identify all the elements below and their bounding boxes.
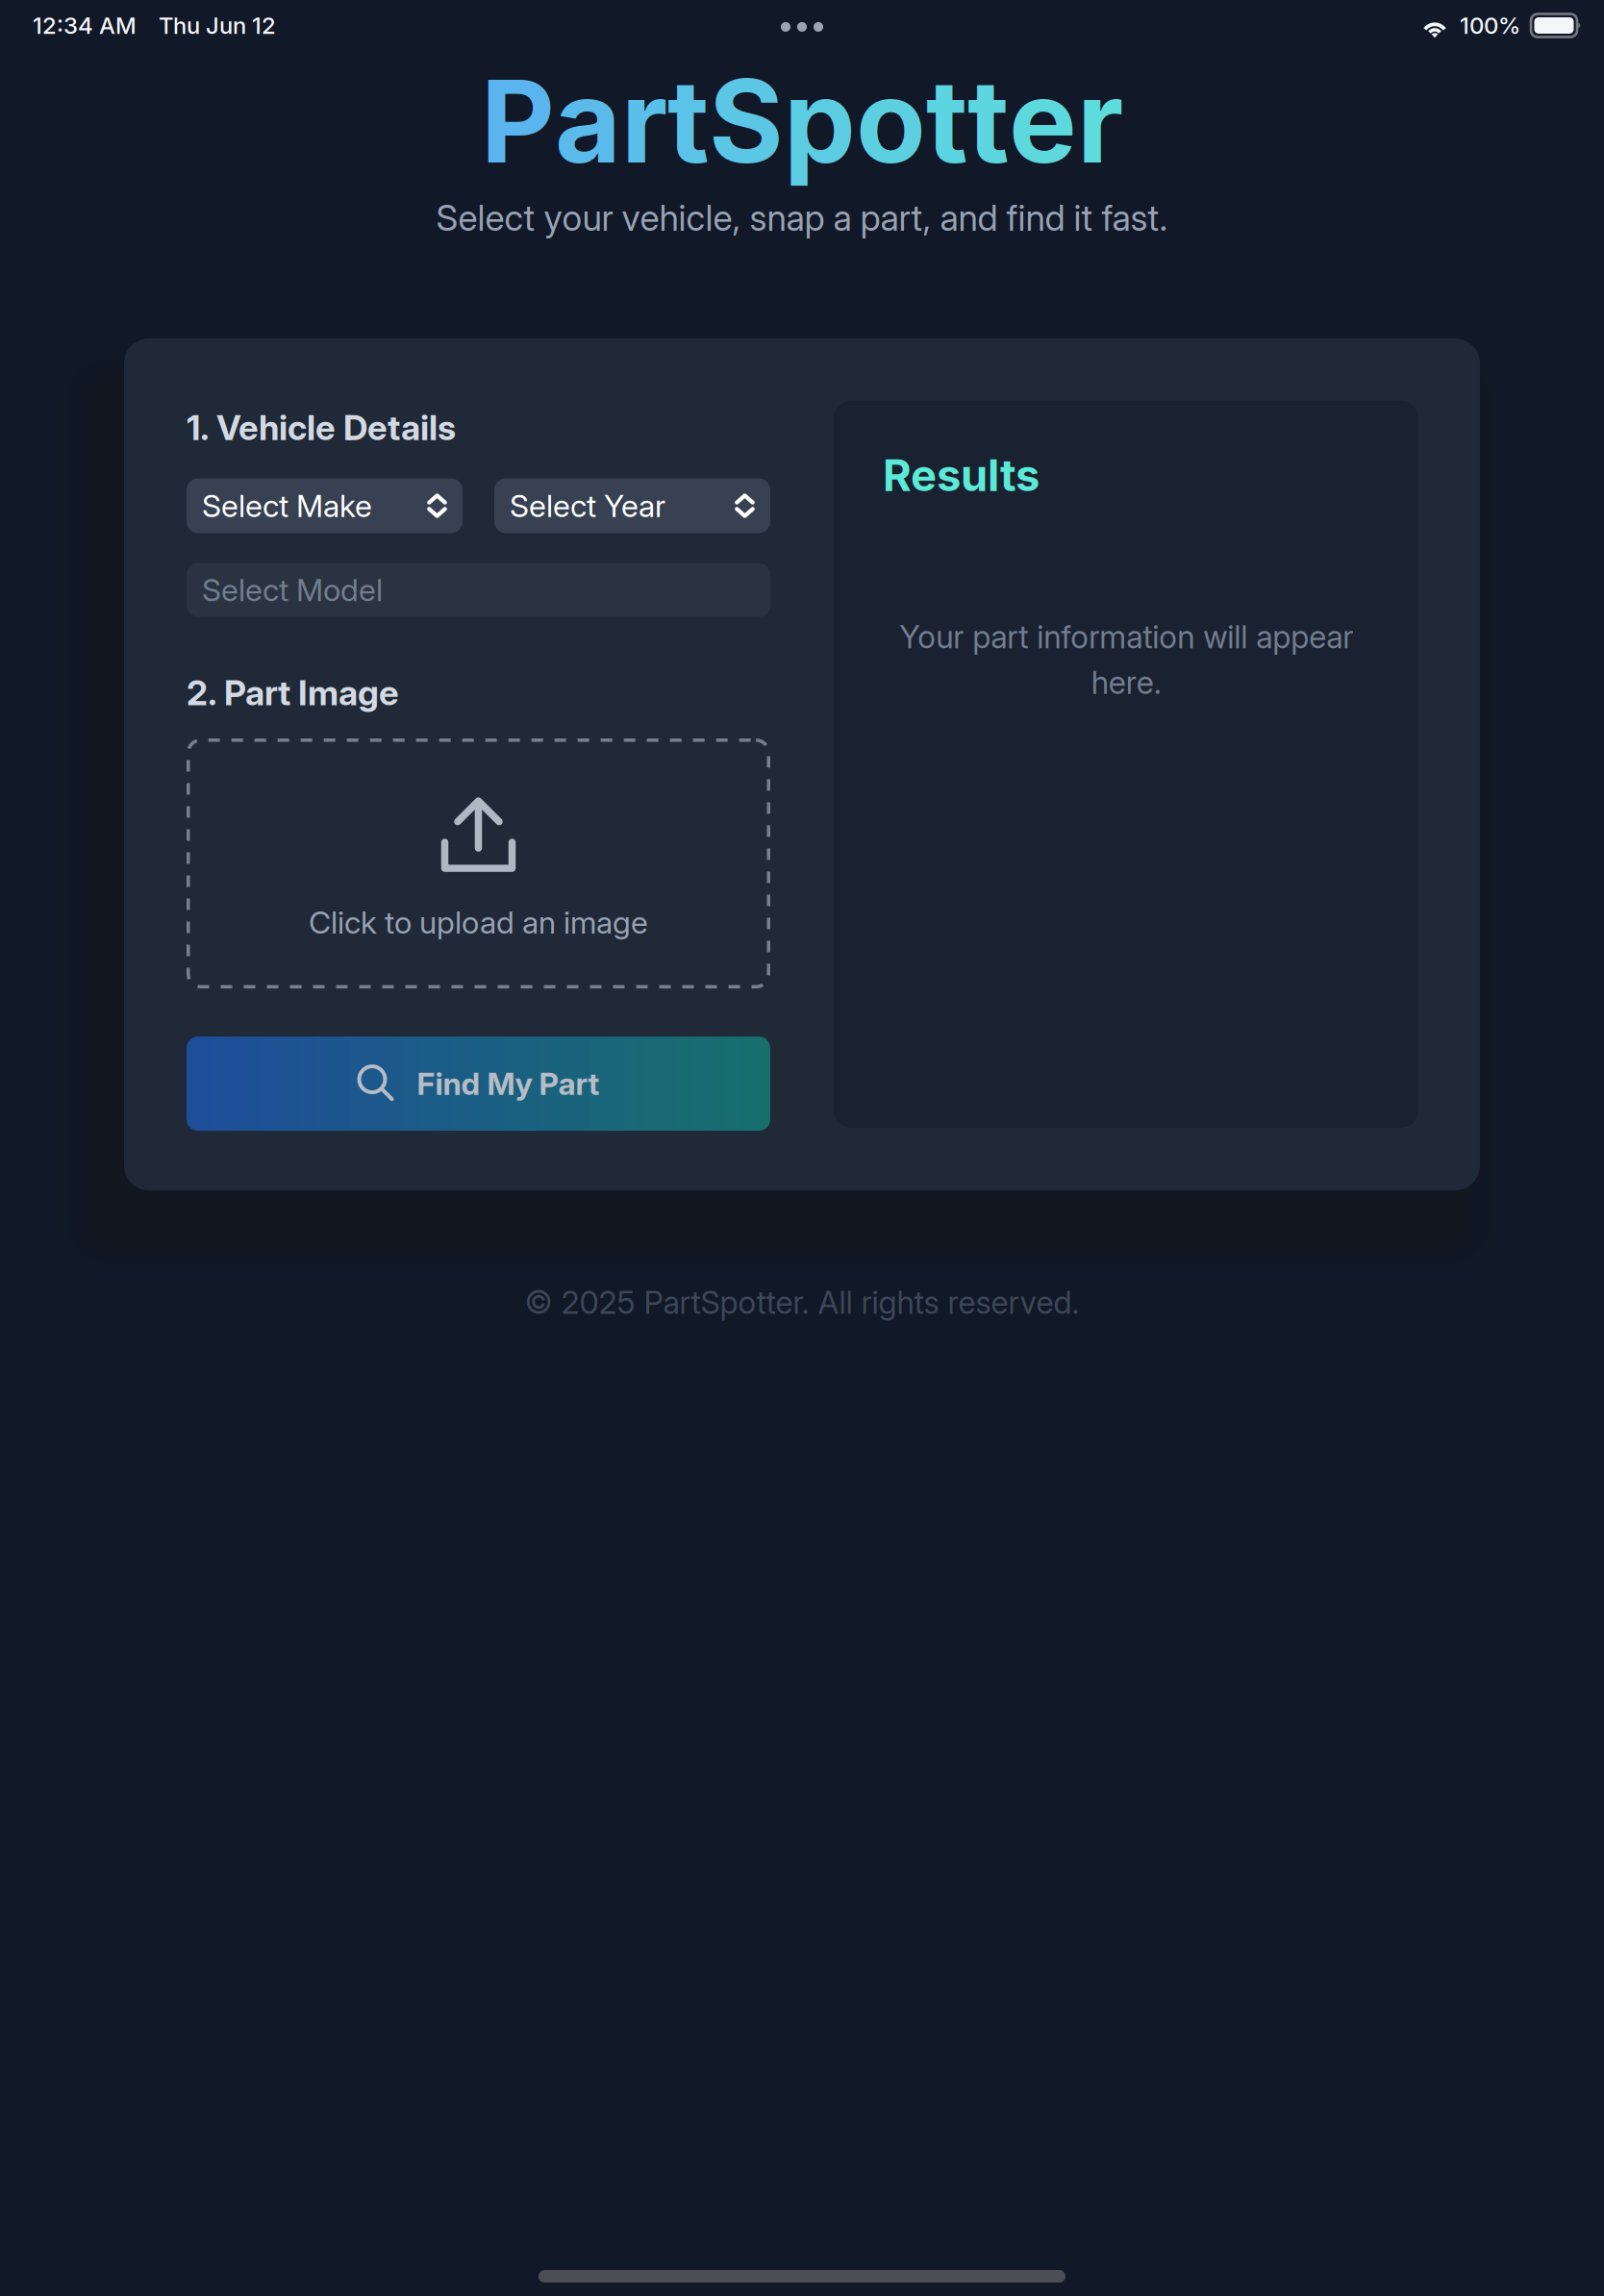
staticText: t [926,52,967,190]
staticText: Results [883,449,1040,502]
staticText: Your part information will appear here. [899,618,1353,701]
staticText: © 2025 PartSpotter. All rights reserved. [525,1284,1079,1322]
staticText: e [1009,52,1077,190]
button[interactable]: Select Year [494,478,770,533]
staticText: Find My Part [417,1065,600,1102]
staticText: 100% [1460,12,1520,39]
button[interactable]: Click to upload an image [187,739,770,988]
staticText: 12:34 AM [33,12,137,39]
staticText: t [967,52,1009,190]
staticText: p [784,52,856,190]
staticText: Select Year [510,487,665,524]
staticText: Select Model [202,571,383,608]
staticText: 2. Part Image [187,672,399,714]
staticText: S [709,52,784,190]
staticText: Thu Jun 12 [159,12,276,39]
staticText: a [555,52,621,190]
staticText: P [481,52,555,190]
staticText: Select your vehicle, snap a part, and fi… [436,197,1168,239]
staticText: t [667,52,709,190]
button[interactable]: Select Make [187,478,463,533]
button[interactable]: Find My Part [187,1037,770,1131]
staticText: r [1077,52,1123,190]
staticText: Select Make [202,487,372,524]
staticText: 1. Vehicle Details [187,407,456,449]
staticText: r [621,52,667,190]
staticText: o [856,52,926,190]
staticText: Click to upload an image [309,904,648,941]
button[interactable]: Select Model [187,563,770,617]
